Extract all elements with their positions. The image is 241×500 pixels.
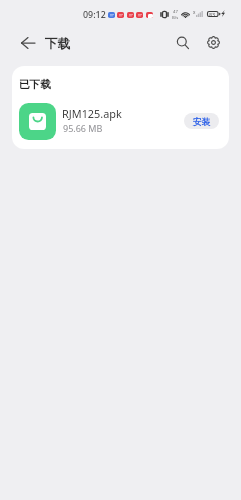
staticText: 安装: [193, 117, 211, 128]
staticText: 47: [173, 9, 178, 15]
staticText: B/s: [172, 15, 179, 21]
staticText: RJM125.apk: [62, 106, 122, 121]
staticText: 95.66 MB: [63, 122, 103, 134]
staticText: 09:12: [83, 8, 106, 20]
button[interactable]: 安装: [184, 113, 219, 129]
button[interactable]: Search: [168, 28, 197, 57]
staticText: 83: [209, 11, 216, 18]
staticText: 下载: [45, 36, 71, 52]
button[interactable]: RJM125.apk: [12, 97, 229, 146]
button[interactable]: Back: [13, 28, 42, 57]
button[interactable]: Settings: [199, 28, 228, 57]
staticText: 已下载: [19, 78, 51, 91]
staticText: x: [193, 9, 196, 15]
